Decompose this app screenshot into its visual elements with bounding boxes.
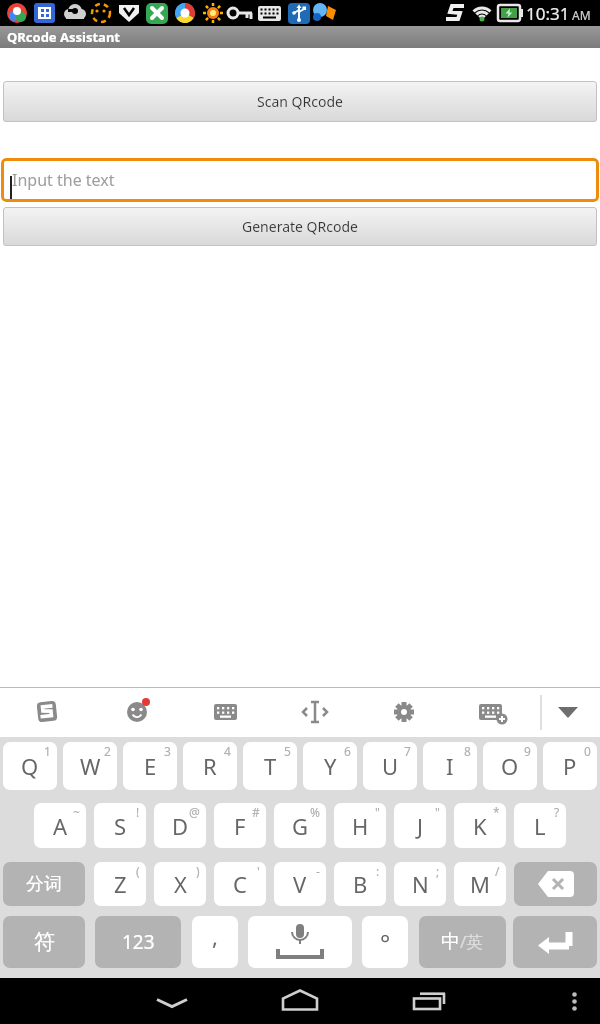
staticText: 9 — [524, 743, 531, 759]
button[interactable]: A — [34, 803, 86, 848]
button[interactable]: Q — [3, 742, 57, 790]
staticText: 10:31 — [526, 2, 570, 25]
button[interactable]: V — [274, 862, 326, 906]
staticText: , — [212, 921, 218, 951]
staticText: P — [563, 751, 577, 781]
staticText: M — [470, 869, 490, 899]
staticText: ' — [257, 863, 260, 879]
button[interactable]: S — [94, 803, 146, 848]
staticText: X — [174, 869, 187, 899]
button[interactable]: Z — [94, 862, 146, 906]
staticText: % — [310, 804, 320, 820]
button[interactable]: G — [274, 803, 326, 848]
staticText: K — [473, 811, 487, 841]
staticText: Input the text — [12, 169, 115, 191]
staticText: J — [417, 811, 424, 841]
button[interactable]: W — [63, 742, 117, 790]
button[interactable]: D — [154, 803, 206, 848]
staticText: 8 — [464, 743, 471, 759]
staticText: /英 — [460, 930, 484, 953]
staticText: 分词 — [26, 873, 62, 896]
button[interactable]: 中 — [419, 916, 506, 968]
button[interactable] — [248, 982, 352, 1022]
button[interactable]: Scan QRcode — [3, 81, 597, 122]
staticText: ? — [554, 804, 560, 820]
staticText: 2 — [104, 743, 111, 759]
button[interactable]: M — [454, 862, 506, 906]
button[interactable]: C — [214, 862, 266, 906]
staticText: ~ — [73, 804, 80, 820]
staticText: F — [234, 811, 246, 841]
button[interactable]: ° — [362, 916, 408, 968]
button[interactable]: I — [423, 742, 477, 790]
staticText: @ — [189, 804, 200, 820]
staticText: W — [80, 751, 101, 781]
staticText: ) — [196, 863, 200, 879]
button[interactable]: , — [192, 916, 238, 968]
button[interactable]: R — [183, 742, 237, 790]
button[interactable]: X — [154, 862, 206, 906]
staticText: U — [382, 751, 399, 781]
button[interactable]: K — [454, 803, 506, 848]
button[interactable] — [514, 862, 597, 906]
staticText: # — [252, 804, 260, 820]
button[interactable] — [378, 982, 482, 1022]
button[interactable]: P — [543, 742, 597, 790]
staticText: 6 — [344, 743, 351, 759]
button[interactable]: Input the text — [1, 158, 599, 202]
staticText: Generate QRcode — [242, 217, 358, 236]
button[interactable]: T — [243, 742, 297, 790]
staticText: 3 — [164, 743, 171, 759]
staticText: Z — [114, 869, 127, 899]
button[interactable] — [248, 916, 352, 968]
staticText: 123 — [122, 929, 155, 955]
button[interactable]: 符 — [3, 916, 85, 968]
button[interactable]: U — [363, 742, 417, 790]
button[interactable]: Generate QRcode — [3, 207, 597, 246]
staticText: 5 — [284, 743, 291, 759]
button[interactable] — [513, 916, 597, 968]
staticText: Q — [21, 751, 39, 781]
button[interactable]: O — [483, 742, 537, 790]
staticText: Scan QRcode — [257, 92, 343, 111]
staticText: " — [375, 804, 380, 820]
button[interactable]: 分词 — [3, 862, 85, 906]
button[interactable]: B — [334, 862, 386, 906]
button[interactable]: H — [334, 803, 386, 848]
staticText: V — [293, 869, 307, 899]
staticText: AM — [572, 7, 591, 23]
staticText: " — [435, 804, 440, 820]
staticText: Y — [324, 751, 337, 781]
staticText: / — [495, 863, 500, 879]
staticText: QRcode Assistant — [7, 28, 120, 46]
staticText: L — [534, 811, 546, 841]
staticText: N — [412, 869, 429, 899]
staticText: ° — [380, 926, 391, 959]
staticText: D — [172, 811, 189, 841]
staticText: 7 — [404, 743, 411, 759]
staticText: O — [501, 751, 519, 781]
staticText: I — [446, 751, 454, 781]
staticText: C — [233, 869, 247, 899]
staticText: T — [264, 751, 277, 781]
staticText: 4 — [224, 743, 231, 759]
button[interactable]: J — [394, 803, 446, 848]
staticText: H — [352, 811, 369, 841]
staticText: 中 — [441, 930, 460, 954]
button[interactable]: E — [123, 742, 177, 790]
button[interactable]: L — [514, 803, 566, 848]
staticText: B — [353, 869, 368, 899]
button[interactable]: N — [394, 862, 446, 906]
staticText: ! — [136, 804, 140, 820]
staticText: A — [53, 811, 68, 841]
button[interactable]: F — [214, 803, 266, 848]
button[interactable]: 123 — [95, 916, 181, 968]
staticText: 0 — [584, 743, 591, 759]
button[interactable] — [120, 982, 224, 1022]
staticText: S — [114, 811, 127, 841]
staticText: 1 — [44, 743, 51, 759]
staticText: - — [316, 863, 320, 879]
button[interactable]: Y — [303, 742, 357, 790]
staticText: * — [493, 804, 500, 820]
staticText: E — [144, 751, 157, 781]
